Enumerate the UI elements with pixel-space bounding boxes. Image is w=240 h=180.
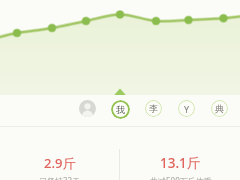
button[interactable]: 我 xyxy=(111,100,130,119)
button[interactable]: Y xyxy=(178,100,195,117)
staticText: 已坚持32天 xyxy=(39,175,81,180)
staticText: 2.9斤 xyxy=(44,154,76,172)
staticText: 共减500万斤体重 xyxy=(150,175,212,180)
staticText: Y xyxy=(184,103,190,115)
button[interactable] xyxy=(79,100,96,117)
staticText: 13.1斤 xyxy=(160,154,201,172)
staticText: 李 xyxy=(149,103,158,114)
staticText: 典 xyxy=(215,103,224,114)
staticText: 我 xyxy=(116,104,125,115)
button[interactable]: 典 xyxy=(211,100,228,117)
button[interactable]: 李 xyxy=(145,100,162,117)
